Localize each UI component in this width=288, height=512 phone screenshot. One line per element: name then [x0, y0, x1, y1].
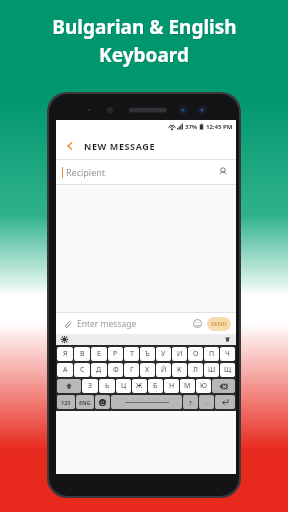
button[interactable]: А	[57, 363, 73, 377]
staticText: И	[177, 349, 183, 359]
button[interactable]: Emoji	[191, 317, 204, 330]
button[interactable]: Т	[124, 347, 139, 361]
button[interactable]: Key	[111, 395, 182, 409]
button[interactable]: ?	[183, 395, 198, 409]
staticText: 37%	[185, 123, 198, 131]
staticText: Л	[193, 365, 198, 375]
staticText: У	[161, 349, 166, 359]
button[interactable]: Attach	[61, 317, 74, 330]
staticText: 12:45 PM	[206, 123, 233, 131]
button[interactable]: SEND	[207, 317, 231, 331]
staticText: Keyboard	[100, 43, 190, 69]
button[interactable]: Б	[148, 379, 163, 393]
button[interactable]: Back	[62, 138, 78, 154]
button[interactable]: Х	[140, 363, 155, 377]
button[interactable]: Ш	[204, 363, 219, 377]
staticText: Bulgarian & English	[53, 15, 238, 41]
staticText: Щ	[224, 365, 232, 375]
staticText: Ь	[105, 381, 110, 391]
button[interactable]: Е	[91, 347, 107, 361]
staticText: Ч	[225, 349, 230, 359]
button[interactable]: Ф	[108, 363, 123, 377]
staticText: Ш	[208, 365, 216, 375]
staticText: О	[193, 349, 199, 359]
button[interactable]: Enter message	[77, 318, 137, 330]
staticText: Я	[63, 349, 68, 359]
staticText: Ю	[200, 381, 207, 391]
button[interactable]: П	[204, 347, 219, 361]
staticText: Recipient	[66, 166, 106, 178]
button[interactable]: С	[74, 363, 90, 377]
button[interactable]: Recipient	[56, 160, 236, 184]
button[interactable]: Ъ	[140, 347, 155, 361]
button[interactable]: Choose contact	[216, 165, 230, 179]
staticText: Х	[145, 365, 150, 375]
staticText: А	[63, 365, 68, 375]
staticText: Ф	[113, 365, 119, 375]
staticText: 123	[61, 399, 71, 406]
button[interactable]: Ж	[132, 379, 147, 393]
button[interactable]: Г	[124, 363, 139, 377]
staticText: Keyboard	[99, 42, 189, 68]
button[interactable]: Ч	[220, 347, 235, 361]
staticText: Б	[153, 381, 158, 391]
staticText: ?	[189, 399, 192, 406]
button[interactable]: М	[180, 379, 195, 393]
button[interactable]: И	[172, 347, 187, 361]
button[interactable]: К	[172, 363, 187, 377]
button[interactable]: Щ	[220, 363, 235, 377]
staticText: Р	[113, 349, 118, 359]
staticText: Е	[97, 349, 101, 359]
button[interactable]: Ц	[116, 379, 131, 393]
staticText: ENG	[79, 399, 91, 406]
button[interactable]: У	[156, 347, 171, 361]
button[interactable]: Н	[164, 379, 179, 393]
button[interactable]: Д	[91, 363, 107, 377]
staticText: Ж	[136, 381, 143, 391]
staticText: .	[206, 399, 208, 406]
staticText: Н	[169, 381, 175, 391]
button[interactable]: Я	[57, 347, 73, 361]
staticText: П	[209, 349, 215, 359]
button[interactable]: Р	[108, 347, 123, 361]
button[interactable]: В	[74, 347, 90, 361]
staticText: В	[80, 349, 85, 359]
staticText: Г	[130, 365, 134, 375]
staticText: К	[177, 365, 182, 375]
button[interactable]: Ь	[99, 379, 115, 393]
staticText: Т	[130, 349, 134, 359]
button[interactable]: Ю	[196, 379, 211, 393]
staticText: З	[88, 381, 93, 391]
button[interactable]: Key	[212, 379, 235, 393]
staticText: Д	[96, 365, 102, 375]
button[interactable]: Л	[188, 363, 203, 377]
staticText: Й	[161, 365, 167, 375]
staticText: SEND	[211, 320, 227, 328]
button[interactable]: Keyboard settings	[60, 335, 69, 344]
button[interactable]: З	[82, 379, 98, 393]
staticText: Ъ	[145, 349, 150, 359]
staticText: Bulgarian & English	[52, 14, 237, 40]
button[interactable]: Clipboard	[223, 335, 232, 344]
staticText: NEW MESSAGE	[84, 140, 156, 152]
button[interactable]: ENG	[76, 395, 94, 409]
staticText: М	[184, 381, 191, 391]
staticText: Ц	[121, 381, 127, 391]
button[interactable]: О	[188, 347, 203, 361]
button[interactable]: 123	[57, 395, 75, 409]
button[interactable]: Й	[156, 363, 171, 377]
button[interactable]: Key	[95, 395, 110, 409]
button[interactable]: Key	[215, 395, 235, 409]
staticText: С	[80, 365, 85, 375]
button[interactable]: .	[199, 395, 214, 409]
button[interactable]: Key	[57, 379, 81, 393]
